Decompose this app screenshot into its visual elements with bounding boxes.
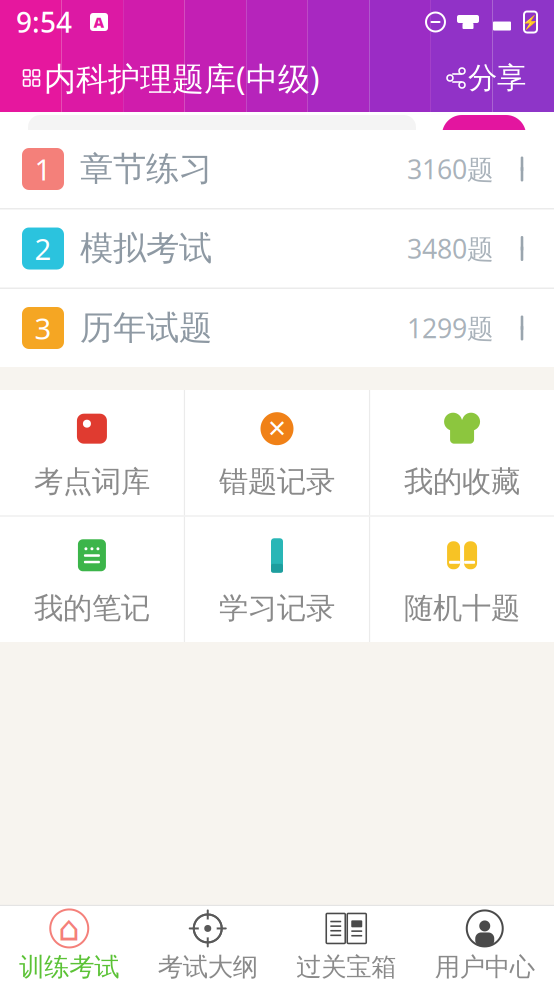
staticText: 1299题	[407, 310, 494, 346]
staticText: 2	[34, 229, 51, 268]
staticText: 9:54	[16, 3, 72, 41]
staticText: 模拟考试	[80, 228, 212, 269]
button[interactable]: 过关宝箱	[277, 906, 415, 984]
staticText: 1	[34, 149, 51, 188]
staticText: 用户中心	[435, 951, 535, 982]
staticText: ✕	[267, 415, 287, 442]
button[interactable]: 我的笔记	[0, 517, 184, 642]
button[interactable]: ⌂	[0, 906, 138, 984]
staticText: 3160题	[407, 151, 494, 187]
button[interactable]: 学习记录	[185, 517, 369, 642]
staticText: 考点词库	[34, 464, 150, 500]
staticText: 3480题	[407, 231, 494, 266]
button[interactable]: 1	[0, 130, 554, 208]
staticText: 内科护理题库(中级)	[44, 57, 320, 99]
button[interactable]: 随机十题	[370, 517, 554, 642]
staticText: 随机十题	[404, 590, 520, 626]
staticText: ⌂	[58, 909, 80, 948]
button[interactable]: 2	[0, 209, 554, 287]
button[interactable]: 分享	[440, 52, 532, 104]
staticText: 过关宝箱	[296, 951, 396, 982]
button[interactable]: 考点词库	[0, 390, 184, 515]
button[interactable]: 考试大纲	[138, 906, 277, 984]
staticText: 历年试题	[80, 307, 212, 348]
staticText: 错题记录	[219, 464, 335, 500]
staticText: 章节练习	[80, 148, 212, 189]
staticText: ⚡	[522, 14, 539, 30]
button[interactable]: 我的收藏	[370, 390, 554, 515]
button[interactable]: 用户中心	[415, 906, 554, 984]
staticText: 3	[34, 308, 51, 347]
staticText: 学习记录	[219, 590, 335, 626]
staticText: A	[93, 12, 104, 32]
button[interactable]: 3	[0, 289, 554, 367]
button[interactable]: ✕	[185, 390, 369, 515]
staticText: 我的收藏	[404, 464, 520, 500]
staticText: 我的笔记	[34, 590, 150, 626]
staticText: 分享	[468, 60, 526, 96]
staticText: 考试大纲	[158, 951, 258, 982]
staticText: 训练考试	[19, 951, 119, 982]
